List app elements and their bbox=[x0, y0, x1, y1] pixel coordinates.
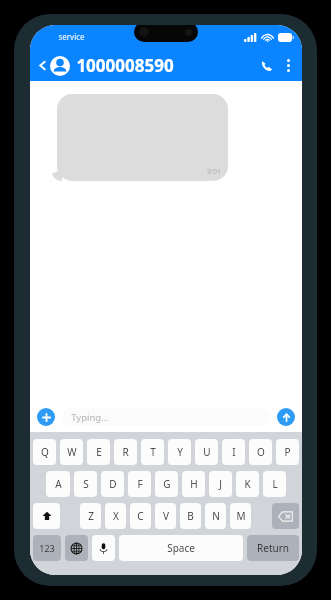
button[interactable]: Backspace bbox=[272, 503, 299, 529]
button[interactable]: P bbox=[276, 439, 299, 465]
button[interactable]: Shift bbox=[33, 503, 60, 529]
staticText: I bbox=[232, 445, 236, 459]
staticText: U bbox=[203, 445, 211, 459]
button[interactable]: T bbox=[141, 439, 164, 465]
button[interactable]: A bbox=[46, 471, 70, 497]
button[interactable]: Z bbox=[80, 503, 101, 529]
staticText: Y bbox=[177, 445, 183, 459]
button[interactable]: U bbox=[195, 439, 218, 465]
staticText: P bbox=[284, 445, 291, 459]
staticText: L bbox=[272, 477, 278, 491]
staticText: Return bbox=[257, 541, 289, 555]
staticText: D bbox=[109, 477, 117, 491]
staticText: M bbox=[236, 509, 246, 523]
button[interactable]: Change keyboard language bbox=[65, 535, 88, 561]
button[interactable]: C bbox=[130, 503, 151, 529]
staticText: Typing... bbox=[71, 411, 109, 424]
button[interactable]: N bbox=[205, 503, 226, 529]
button[interactable]: W bbox=[60, 439, 83, 465]
staticText: J bbox=[219, 477, 222, 491]
button[interactable]: More options bbox=[280, 57, 297, 74]
staticText: 123 bbox=[39, 542, 55, 554]
button[interactable]: Return bbox=[247, 535, 299, 561]
button[interactable]: 123 bbox=[33, 535, 61, 561]
staticText: X bbox=[113, 509, 119, 523]
button[interactable]: 9:01 bbox=[57, 94, 228, 181]
button[interactable]: M bbox=[230, 503, 251, 529]
button[interactable]: H bbox=[182, 471, 205, 497]
button[interactable]: I bbox=[222, 439, 245, 465]
button[interactable]: L bbox=[263, 471, 286, 497]
staticText: E bbox=[96, 445, 102, 459]
button[interactable]: O bbox=[249, 439, 272, 465]
staticText: Z bbox=[88, 509, 94, 523]
button[interactable]: Y bbox=[168, 439, 191, 465]
button[interactable]: B bbox=[180, 503, 201, 529]
button[interactable]: Back bbox=[35, 58, 50, 73]
button[interactable]: F bbox=[128, 471, 151, 497]
button[interactable]: G bbox=[155, 471, 178, 497]
staticText: H bbox=[190, 477, 198, 491]
staticText: W bbox=[67, 445, 77, 459]
staticText: N bbox=[212, 509, 220, 523]
staticText: 1000008590 bbox=[76, 54, 174, 77]
staticText: 9:01 bbox=[207, 167, 221, 177]
button[interactable]: Call bbox=[256, 55, 277, 76]
staticText: T bbox=[150, 445, 156, 459]
button[interactable]: Voice input bbox=[92, 535, 115, 561]
button[interactable]: V bbox=[155, 503, 176, 529]
staticText: Space bbox=[167, 541, 195, 555]
staticText: Q bbox=[41, 445, 49, 459]
staticText: K bbox=[244, 477, 251, 491]
button[interactable]: Q bbox=[33, 439, 56, 465]
button[interactable]: E bbox=[87, 439, 110, 465]
staticText: G bbox=[163, 477, 171, 491]
button[interactable]: Space bbox=[119, 535, 243, 561]
staticText: V bbox=[163, 509, 169, 523]
staticText: O bbox=[257, 445, 265, 459]
button[interactable]: Add attachment bbox=[37, 408, 55, 426]
staticText: C bbox=[137, 509, 144, 523]
button[interactable]: K bbox=[236, 471, 259, 497]
staticText: F bbox=[137, 477, 143, 491]
button[interactable]: Typing... bbox=[62, 408, 270, 426]
staticText: B bbox=[187, 509, 194, 523]
button[interactable]: R bbox=[114, 439, 137, 465]
staticText: service bbox=[58, 31, 85, 42]
button[interactable]: S bbox=[74, 471, 97, 497]
button[interactable]: X bbox=[105, 503, 126, 529]
staticText: A bbox=[55, 477, 62, 491]
staticText: R bbox=[122, 445, 129, 459]
staticText: S bbox=[83, 477, 89, 491]
button[interactable]: D bbox=[101, 471, 124, 497]
button[interactable]: Send bbox=[277, 408, 295, 426]
button[interactable]: J bbox=[209, 471, 232, 497]
button[interactable]: Contact bbox=[50, 56, 70, 76]
